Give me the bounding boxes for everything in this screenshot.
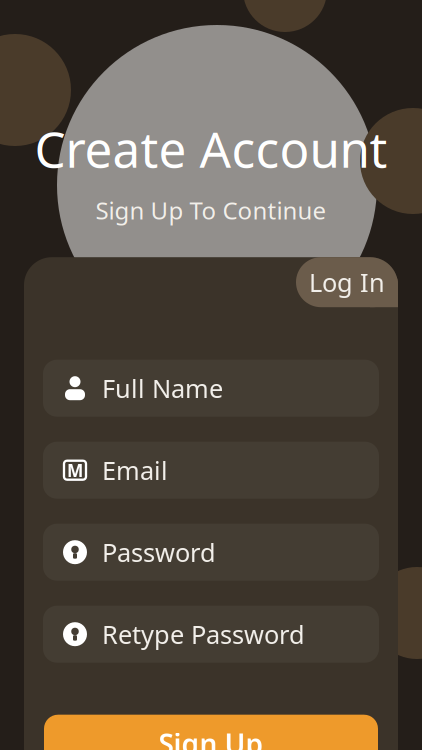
staticText: Create Account <box>34 116 387 181</box>
staticText: Password <box>102 535 216 569</box>
button[interactable]: M <box>43 442 379 499</box>
staticText: Log In <box>309 265 385 299</box>
staticText: Email <box>102 453 168 487</box>
staticText: Full Name <box>102 371 223 405</box>
button[interactable]: Password <box>43 524 379 581</box>
button[interactable]: Sign Up <box>44 715 378 750</box>
staticText: Sign Up To Continue <box>95 194 326 226</box>
staticText: M <box>67 459 83 482</box>
staticText: Retype Password <box>102 617 305 651</box>
button[interactable]: Log In <box>296 257 398 307</box>
button[interactable]: Retype Password <box>43 606 379 663</box>
staticText: Sign Up <box>158 725 263 750</box>
button[interactable]: Full Name <box>43 360 379 417</box>
